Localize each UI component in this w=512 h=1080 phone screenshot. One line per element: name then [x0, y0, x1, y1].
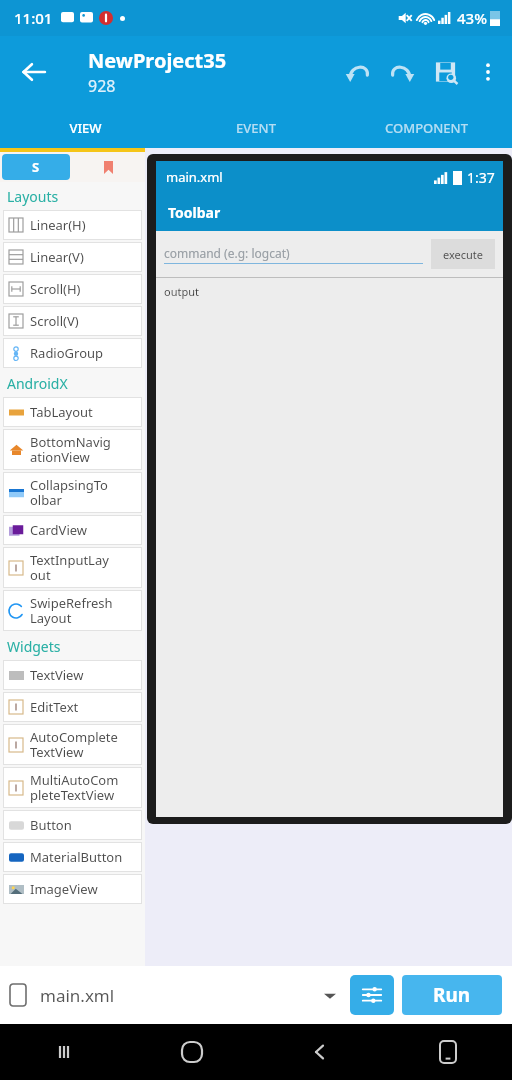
- button[interactable]: COMPONENT: [341, 108, 512, 148]
- button[interactable]: execute: [431, 239, 495, 269]
- staticText: main.xml: [166, 168, 223, 186]
- button[interactable]: Settings: [350, 975, 394, 1015]
- button[interactable]: Button: [8, 814, 137, 836]
- staticText: NewProject35: [88, 47, 227, 74]
- button[interactable]: Recent apps: [0, 1024, 128, 1080]
- button[interactable]: Run: [402, 975, 502, 1015]
- button[interactable]: Back: [10, 48, 58, 96]
- button[interactable]: MaterialButton: [8, 846, 137, 868]
- button[interactable]: CollapsingTo olbar: [8, 476, 137, 509]
- button[interactable]: TextInputLay out: [8, 551, 137, 584]
- button[interactable]: Redo: [380, 50, 424, 94]
- staticText: CollapsingTo olbar: [30, 476, 108, 509]
- staticText: 928: [88, 75, 116, 97]
- staticText: VIEW: [69, 119, 102, 137]
- button[interactable]: Keyboard: [384, 1024, 512, 1080]
- staticText: MaterialButton: [30, 848, 123, 866]
- staticText: Button: [30, 816, 72, 834]
- button[interactable]: Linear(H): [8, 214, 137, 236]
- button[interactable]: EditText: [8, 696, 137, 718]
- button[interactable]: More options: [468, 52, 508, 92]
- staticText: Layouts: [7, 187, 59, 206]
- button[interactable]: Scroll(H): [8, 278, 137, 300]
- staticText: COMPONENT: [385, 119, 468, 137]
- button[interactable]: Back: [256, 1024, 384, 1080]
- staticText: Scroll(V): [30, 312, 79, 330]
- staticText: Linear(V): [30, 248, 84, 266]
- button[interactable]: EVENT: [170, 108, 341, 148]
- staticText: command (e.g: logcat): [164, 245, 290, 261]
- button[interactable]: CardView: [8, 519, 137, 541]
- staticText: 1:37: [467, 168, 495, 187]
- staticText: Linear(H): [30, 216, 86, 234]
- staticText: TextView: [30, 666, 84, 684]
- button[interactable]: ImageView: [8, 878, 137, 900]
- button[interactable]: Bookmarks: [72, 152, 145, 182]
- button[interactable]: Undo: [336, 50, 380, 94]
- button[interactable]: BottomNavig ationView: [8, 433, 137, 466]
- staticText: EVENT: [236, 119, 276, 137]
- staticText: AndroidX: [7, 374, 68, 393]
- staticText: EditText: [30, 698, 79, 716]
- button[interactable]: TextView: [8, 664, 137, 686]
- staticText: AutoComplete TextView: [30, 728, 118, 761]
- button[interactable]: SwipeRefresh Layout: [8, 594, 137, 627]
- button[interactable]: TabLayout: [8, 401, 137, 423]
- staticText: TextInputLay out: [30, 551, 109, 584]
- staticText: output: [164, 284, 199, 299]
- staticText: main.xml: [40, 984, 115, 1007]
- button[interactable]: main.xml: [40, 984, 350, 1007]
- staticText: Run: [433, 982, 471, 1008]
- staticText: Scroll(H): [30, 280, 81, 298]
- staticText: S: [32, 158, 40, 176]
- staticText: MultiAutoCom pleteTextView: [30, 771, 119, 804]
- staticText: TabLayout: [30, 403, 93, 421]
- button[interactable]: Views palette: [2, 154, 70, 180]
- button[interactable]: Home: [128, 1024, 256, 1080]
- button[interactable]: VIEW: [0, 108, 170, 148]
- button[interactable]: RadioGroup: [8, 342, 137, 364]
- button[interactable]: Linear(V): [8, 246, 137, 268]
- staticText: execute: [443, 247, 484, 262]
- staticText: ImageView: [30, 880, 98, 898]
- button[interactable]: Save: [424, 50, 468, 94]
- button[interactable]: AutoComplete TextView: [8, 728, 137, 761]
- staticText: Widgets: [7, 637, 61, 656]
- staticText: SwipeRefresh Layout: [30, 594, 113, 627]
- button[interactable]: Scroll(V): [8, 310, 137, 332]
- button[interactable]: MultiAutoCom pleteTextView: [8, 771, 137, 804]
- staticText: CardView: [30, 521, 88, 539]
- staticText: Toolbar: [168, 203, 221, 222]
- staticText: 11:01: [14, 8, 53, 28]
- staticText: 43%: [457, 8, 487, 28]
- staticText: BottomNavig ationView: [30, 433, 111, 466]
- staticText: RadioGroup: [30, 344, 104, 362]
